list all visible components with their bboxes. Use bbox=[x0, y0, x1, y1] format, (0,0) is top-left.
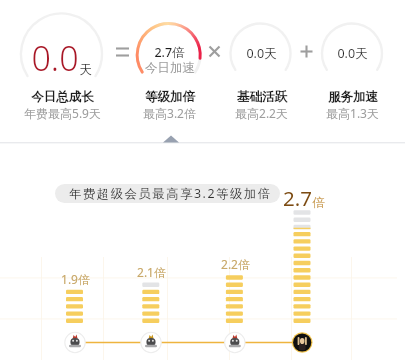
staticText: 2.7 bbox=[283, 184, 312, 212]
button[interactable]: 服务加速 bbox=[290, 89, 405, 121]
button[interactable]: 今日总成长 0.0天 bbox=[21, 35, 101, 81]
staticText: 年费超级会员最高享3.2等级加倍 bbox=[69, 185, 272, 202]
staticText: 等级加倍 bbox=[145, 89, 195, 105]
button[interactable]: 等级加倍 bbox=[107, 89, 231, 121]
staticText: 服务加速 bbox=[328, 89, 378, 105]
button[interactable]: 基础活跃 bbox=[199, 89, 323, 121]
button[interactable]: 年费超级会员最高享3.2等级加倍 bbox=[55, 184, 280, 203]
staticText: 0.0天 bbox=[337, 45, 368, 62]
staticText: 2.1倍 bbox=[137, 264, 166, 280]
staticText: 今日加速 bbox=[145, 60, 195, 76]
staticText: 基础活跃 bbox=[237, 89, 287, 105]
staticText: 0.0 bbox=[31, 35, 79, 81]
staticText: 1.9倍 bbox=[61, 271, 90, 287]
staticText: 年费最高5.9天 bbox=[24, 105, 101, 121]
staticText: 最高3.2倍 bbox=[143, 105, 196, 121]
staticText: 2.7倍 bbox=[154, 44, 185, 61]
staticText: 2.2倍 bbox=[221, 256, 250, 272]
staticText: 最高1.3天 bbox=[326, 105, 379, 121]
staticText: 天 bbox=[79, 62, 92, 78]
button[interactable]: 今日总成长 bbox=[0, 89, 124, 121]
staticText: 今日总成长 bbox=[31, 89, 94, 105]
staticText: 最高2.2天 bbox=[235, 105, 288, 121]
staticText: 倍 bbox=[312, 195, 325, 211]
button[interactable]: 2.7 bbox=[283, 184, 325, 212]
staticText: 0.0天 bbox=[246, 45, 277, 62]
